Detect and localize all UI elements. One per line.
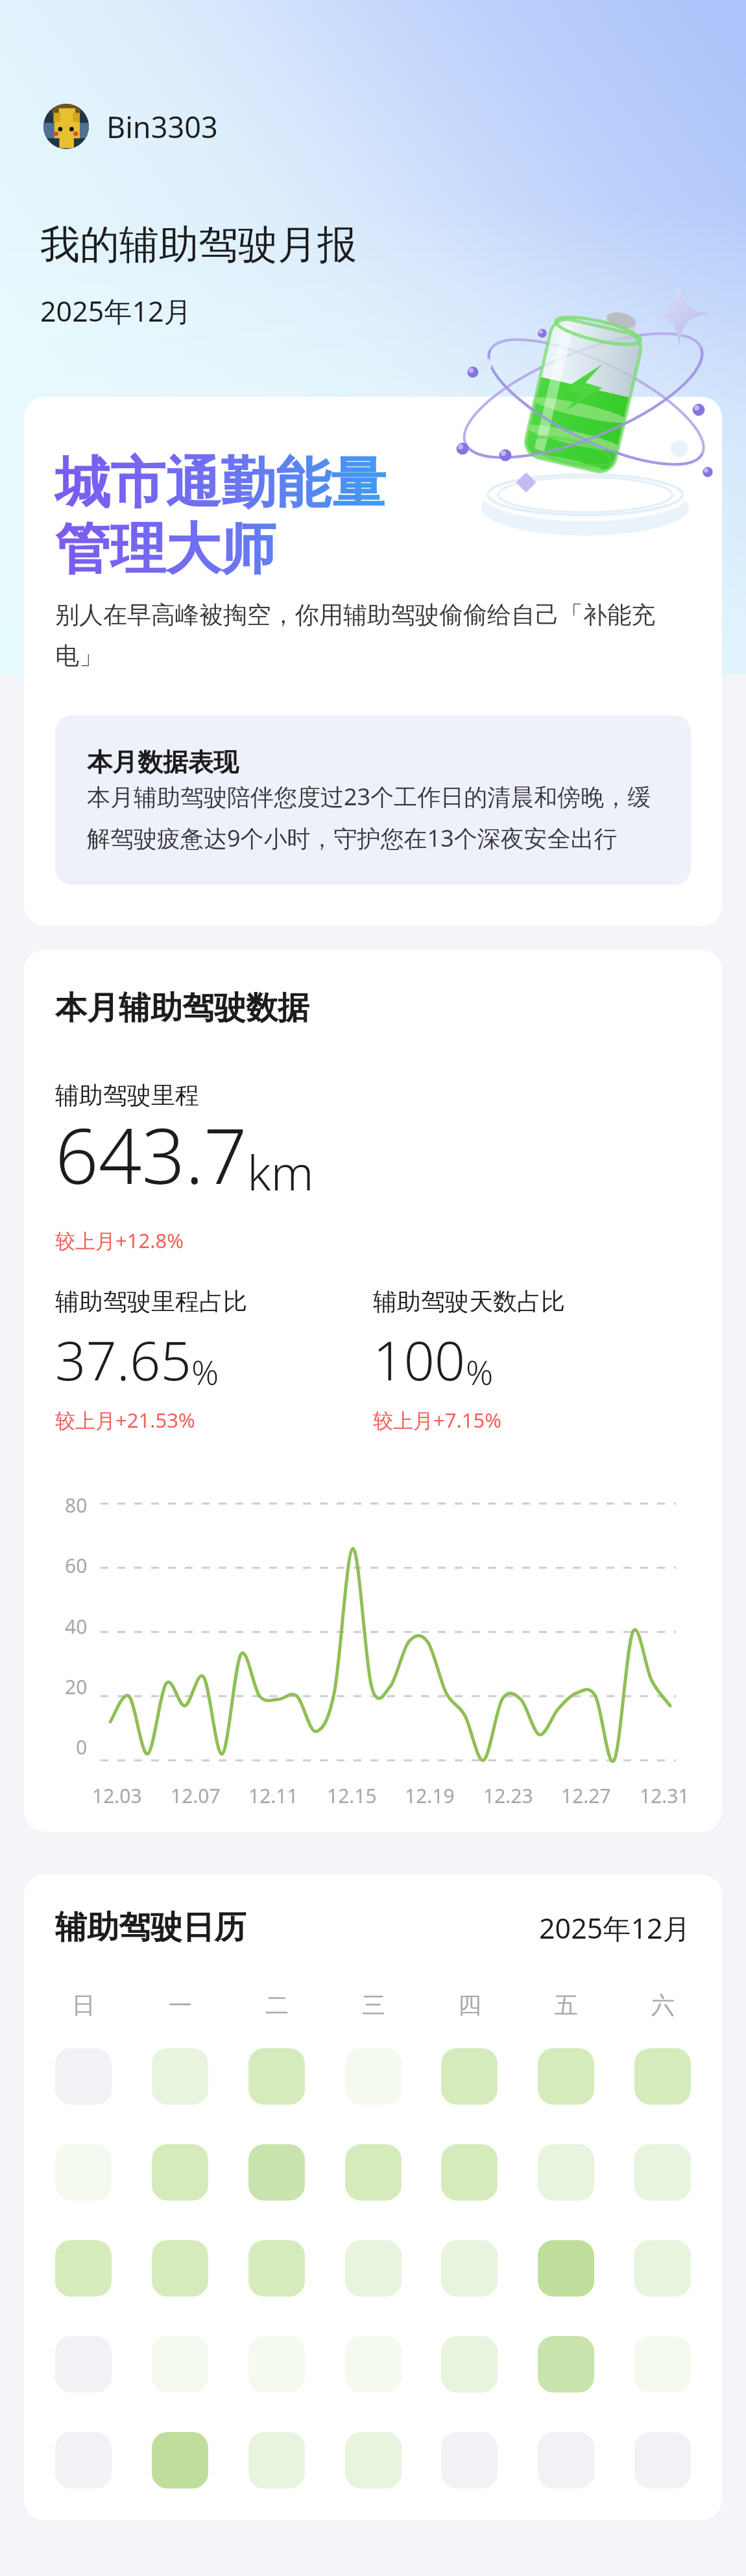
staticText: % [466,1349,494,1395]
staticText: 三 [362,1991,385,2020]
button[interactable] [441,2240,498,2297]
button[interactable] [55,2144,112,2201]
staticText: 较上月+12.8% [55,1227,184,1254]
staticText: 二 [265,1991,289,2020]
staticText: 五 [555,1991,578,2020]
button[interactable] [152,2240,208,2297]
button[interactable] [55,2336,112,2393]
staticText: 12.15 [327,1782,377,1809]
button[interactable] [248,2240,305,2297]
staticText: Bin3303 [106,107,218,147]
staticText: km [247,1139,314,1205]
staticText: 12.11 [248,1782,298,1809]
staticText: 12.03 [92,1782,142,1809]
staticText: 一 [169,1991,192,2020]
button[interactable] [345,2048,402,2105]
staticText: 20 [65,1673,88,1700]
button[interactable] [152,2432,208,2488]
staticText: 六 [651,1991,675,2020]
button[interactable] [634,2048,691,2105]
button[interactable] [152,2144,208,2201]
button[interactable] [634,2432,691,2488]
staticText: 2025年12月 [40,292,192,330]
button[interactable] [634,2336,691,2393]
staticText: 较上月+7.15% [373,1406,501,1434]
staticText: 辅助驾驶天数占比 [373,1286,565,1317]
staticText: 四 [458,1991,481,2020]
button[interactable] [152,2336,208,2393]
other: Profile avatar [43,104,89,149]
button[interactable] [538,2240,594,2297]
staticText: 较上月+21.53% [55,1406,195,1434]
staticText: 0 [76,1734,88,1760]
staticText: 37.65 [55,1323,191,1396]
staticText: 80 [65,1492,88,1518]
button[interactable] [538,2336,594,2393]
button[interactable] [55,2240,112,2297]
button[interactable] [634,2240,691,2297]
staticText: 本月辅助驾驶陪伴您度过23个工作日的清晨和傍晚，缓解驾驶疲惫达9个小时，守护您在… [87,781,659,854]
button[interactable] [441,2144,498,2201]
staticText: 40 [65,1613,88,1640]
staticText: % [191,1349,219,1395]
staticText: 本月辅助驾驶数据 [55,988,309,1028]
button[interactable] [248,2432,305,2488]
button[interactable] [345,2240,402,2297]
button[interactable] [248,2336,305,2393]
button[interactable] [345,2432,402,2488]
staticText: 辅助驾驶日历 [55,1908,246,1948]
staticText: 别人在早高峰被掏空，你用辅助驾驶偷偷给自己「补能充电」 [55,600,691,671]
staticText: 12.27 [561,1782,611,1809]
staticText: 12.07 [171,1782,221,1809]
button[interactable] [441,2336,498,2393]
button[interactable] [441,2432,498,2488]
button[interactable] [634,2144,691,2201]
button[interactable] [345,2144,402,2201]
button[interactable] [538,2144,594,2201]
button[interactable] [55,2432,112,2488]
button[interactable] [441,2048,498,2105]
button[interactable] [248,2144,305,2201]
button[interactable] [345,2336,402,2393]
button[interactable] [55,2048,112,2105]
staticText: 643.7 [55,1103,247,1206]
button[interactable] [538,2432,594,2488]
button[interactable] [248,2048,305,2105]
staticText: 2025年12月 [539,1909,691,1947]
button[interactable] [538,2048,594,2105]
staticText: 60 [65,1552,88,1579]
staticText: 辅助驾驶里程 [55,1080,199,1111]
staticText: 城市通勤能量 管理大师 [55,449,387,584]
staticText: 12.19 [405,1782,455,1809]
staticText: 辅助驾驶里程占比 [55,1286,247,1317]
staticText: 日 [72,1991,95,2020]
staticText: 12.23 [483,1782,533,1809]
staticText: 本月数据表现 [87,746,239,778]
button[interactable]: Profile avatar [43,104,218,149]
staticText: 12.31 [640,1782,690,1809]
staticText: 100 [373,1323,466,1396]
button[interactable] [152,2048,208,2105]
staticText: 我的辅助驾驶月报 [40,220,357,270]
